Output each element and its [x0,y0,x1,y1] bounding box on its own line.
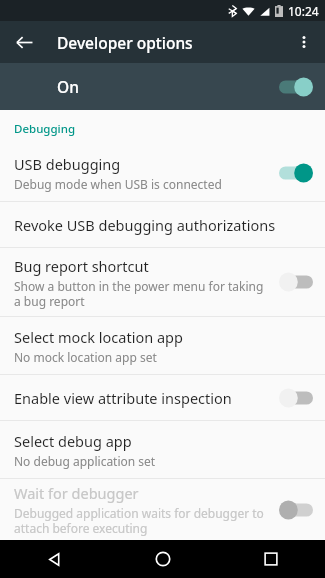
staticText: No debug application set [14,453,156,469]
staticText: Select mock location app [14,327,183,347]
button[interactable]: Enable view attribute inspection [0,375,325,420]
button[interactable]: Recent apps [217,540,325,578]
button[interactable]: More options [286,24,322,60]
button[interactable]: Home [109,540,217,578]
staticText: Select debug app [14,431,132,451]
staticText: On [57,76,79,97]
staticText: Developer options [57,32,193,53]
staticText: Debugged application waits for debugger … [14,505,271,536]
button[interactable]: Bug report shortcut [0,248,325,316]
staticText: Enable view attribute inspection [14,388,232,408]
button[interactable]: Select mock location app [0,317,325,374]
button[interactable]: On [0,63,325,110]
staticText: Show a button in the power menu for taki… [14,278,271,309]
staticText: Revoke USB debugging authorizations [14,215,276,235]
staticText: Wait for debugger [14,483,139,503]
staticText: Debug mode when USB is connected [14,176,222,192]
staticText: 10:24 [288,3,319,19]
button[interactable]: Wait for debugger [0,479,325,540]
staticText: No mock location app set [14,349,157,365]
button[interactable]: Revoke USB debugging authorizations [0,202,325,247]
button[interactable]: Select debug app [0,421,325,478]
staticText: Bug report shortcut [14,256,149,276]
button[interactable]: USB debugging [0,144,325,201]
button[interactable]: Back [0,540,109,578]
button[interactable]: Back [6,24,42,60]
staticText: USB debugging [14,154,121,174]
staticText: Debugging [14,121,76,137]
